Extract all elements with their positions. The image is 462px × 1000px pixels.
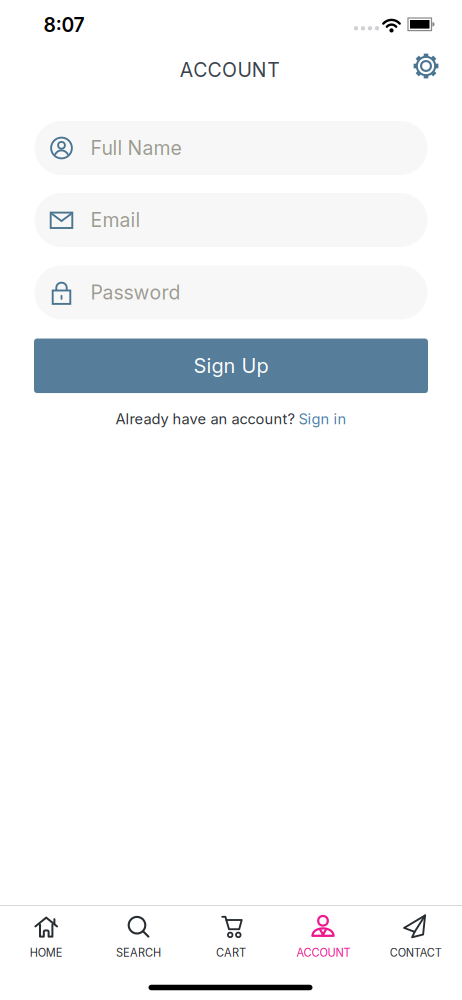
button[interactable]: ACCOUNT — [277, 905, 370, 963]
button[interactable]: Sign Up — [34, 339, 428, 393]
secureTextField[interactable]: Password — [90, 281, 427, 304]
staticText: Password — [90, 281, 180, 304]
staticText: HOME — [30, 946, 63, 959]
button[interactable]: HOME — [0, 905, 92, 963]
textField[interactable]: Full Name — [90, 136, 427, 160]
staticText: Sign in — [298, 410, 346, 428]
button[interactable]: CART — [185, 905, 277, 963]
button[interactable]: Sign in — [298, 410, 346, 428]
textField[interactable]: Email — [90, 208, 427, 232]
button[interactable]: CONTACT — [370, 905, 462, 963]
staticText: Email — [90, 208, 140, 232]
staticText: Sign Up — [193, 354, 268, 378]
staticText: ACCOUNT — [296, 946, 350, 959]
staticText: ACCOUNT — [180, 58, 280, 82]
staticText: Full Name — [90, 136, 181, 160]
button[interactable]: SEARCH — [92, 905, 185, 963]
staticText: SEARCH — [116, 946, 161, 959]
staticText: CART — [216, 946, 246, 959]
staticText: CONTACT — [390, 946, 442, 959]
button[interactable]: Settings — [406, 46, 446, 86]
staticText: 8:07 — [43, 13, 84, 37]
staticText: Already have an account? — [115, 410, 294, 428]
